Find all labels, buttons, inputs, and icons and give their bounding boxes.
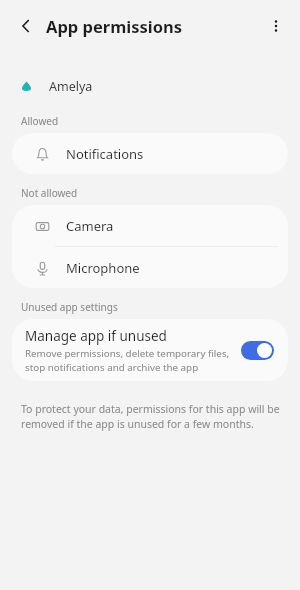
staticText: Notifications	[66, 145, 144, 163]
staticText: Unused app settings	[21, 300, 118, 314]
button[interactable]: Manage app if unused	[12, 319, 288, 381]
staticText: Remove permissions, delete temporary fil…	[25, 347, 230, 373]
button[interactable]: Back	[8, 8, 44, 44]
button[interactable]: Amelya	[0, 72, 300, 100]
staticText: Camera	[66, 217, 114, 235]
staticText: Allowed	[21, 114, 59, 128]
button[interactable]: Notifications	[12, 133, 288, 174]
staticText: Not allowed	[21, 186, 78, 200]
button[interactable]: Microphone	[12, 247, 288, 288]
button[interactable]: More options	[258, 8, 294, 44]
staticText: Manage app if unused	[25, 327, 167, 345]
staticText: App permissions	[46, 15, 183, 37]
staticText: Amelya	[49, 78, 93, 95]
staticText: To protect your data, permissions for th…	[21, 402, 280, 431]
staticText: Microphone	[66, 259, 140, 277]
button[interactable]: Camera	[12, 205, 288, 246]
button[interactable]: Manage app if unused toggle	[241, 341, 274, 360]
